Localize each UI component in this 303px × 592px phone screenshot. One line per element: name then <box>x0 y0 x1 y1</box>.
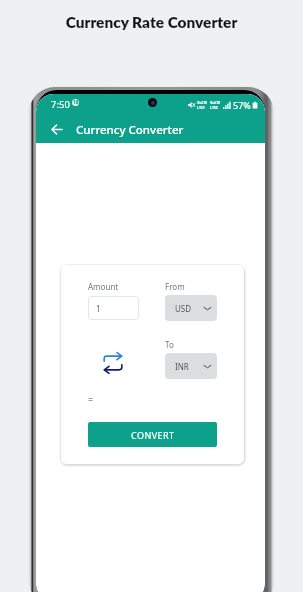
button[interactable]: Swap currencies <box>97 347 129 379</box>
staticText: Amount <box>88 281 119 292</box>
staticText: 1 <box>96 303 101 314</box>
staticText: 7:50 <box>51 98 70 111</box>
staticText: USD <box>175 303 192 314</box>
staticText: CONVERT <box>131 429 175 441</box>
staticText: = <box>88 393 94 405</box>
staticText: Currency Rate Converter <box>0 13 303 31</box>
staticText: Currency Converter <box>76 122 184 138</box>
button[interactable]: INR <box>165 353 217 379</box>
button[interactable]: USD <box>165 295 217 321</box>
staticText: From <box>165 281 185 292</box>
button[interactable]: 1 <box>88 296 139 320</box>
staticText: LTE2 <box>210 105 218 110</box>
staticText: VoLTE <box>210 100 221 105</box>
staticText: To <box>165 339 174 350</box>
staticText: 57% <box>233 99 251 111</box>
staticText: INR <box>175 361 189 372</box>
button[interactable]: CONVERT <box>88 422 217 447</box>
staticText: VoLTE <box>197 100 208 105</box>
button[interactable]: Back <box>42 115 70 143</box>
staticText: 18 <box>73 99 79 106</box>
staticText: LTE1 <box>197 105 205 110</box>
